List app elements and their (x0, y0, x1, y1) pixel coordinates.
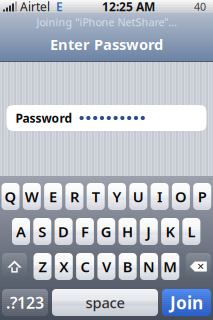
staticText: 40 (194, 0, 206, 14)
button[interactable]: Join (162, 289, 211, 316)
button[interactable]: C (76, 253, 94, 280)
staticText: Airtel (20, 0, 50, 14)
button[interactable]: N (140, 253, 158, 280)
staticText: B (123, 257, 133, 276)
staticText: K (166, 222, 175, 241)
button[interactable]: O (172, 183, 190, 210)
button[interactable]: X (55, 253, 73, 280)
staticText: L (187, 222, 195, 241)
button[interactable]: G (97, 218, 115, 245)
button[interactable]: E (44, 183, 62, 210)
button[interactable]: I (151, 183, 169, 210)
staticText: Y (112, 187, 121, 206)
staticText: M (163, 257, 177, 276)
staticText: X (59, 257, 68, 276)
button[interactable]: Y (108, 183, 126, 210)
button[interactable]: B (119, 253, 137, 280)
button[interactable]: .?123 (2, 289, 48, 316)
staticText: Q (4, 187, 16, 206)
staticText: Z (38, 257, 46, 276)
button[interactable]: S (33, 218, 51, 245)
button[interactable]: P (193, 183, 211, 210)
staticText: T (92, 187, 100, 206)
button[interactable]: J (140, 218, 158, 245)
button[interactable]: R (65, 183, 83, 210)
staticText: F (81, 222, 89, 241)
staticText: E (56, 0, 63, 14)
staticText: S (38, 222, 46, 241)
staticText: Joining “iPhone NetShare”… (36, 15, 176, 29)
staticText: Enter Password (50, 34, 163, 54)
button[interactable]: Z (33, 253, 51, 280)
button[interactable]: M (161, 253, 179, 280)
staticText: A (16, 222, 26, 241)
button[interactable]: Q (1, 183, 19, 210)
staticText: Password (15, 110, 72, 126)
staticText: R (70, 187, 79, 206)
staticText: N (143, 257, 155, 276)
staticText: I (157, 187, 162, 206)
staticText: V (102, 257, 111, 276)
staticText: Join (170, 291, 203, 314)
button[interactable]: Shift (2, 253, 27, 280)
staticText: U (133, 187, 144, 206)
staticText: ✕ (197, 261, 205, 272)
staticText: O (175, 187, 187, 206)
button[interactable]: T (87, 183, 105, 210)
button[interactable]: V (97, 253, 115, 280)
staticText: D (58, 222, 69, 241)
button[interactable]: L (182, 218, 200, 245)
staticText: space (85, 293, 124, 312)
button[interactable]: U (129, 183, 147, 210)
staticText: J (146, 222, 151, 241)
staticText: P (198, 187, 207, 206)
staticText: G (101, 222, 112, 241)
staticText: 12:25 AM (102, 0, 155, 14)
button[interactable]: W (23, 183, 41, 210)
staticText: E (49, 187, 57, 206)
button[interactable]: A (12, 218, 30, 245)
button[interactable]: D (55, 218, 73, 245)
button[interactable]: F (76, 218, 94, 245)
staticText: .?123 (6, 292, 44, 313)
button[interactable]: H (118, 218, 136, 245)
staticText: H (122, 222, 133, 241)
staticText: C (81, 257, 90, 276)
button[interactable]: K (161, 218, 179, 245)
button[interactable]: space (52, 289, 158, 316)
button[interactable]: Delete (186, 253, 211, 280)
staticText: W (25, 187, 39, 206)
